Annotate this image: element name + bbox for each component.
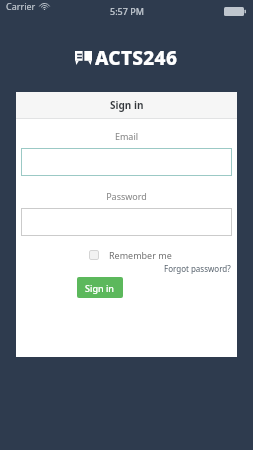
staticText: Password [16, 190, 237, 202]
button[interactable] [21, 208, 232, 236]
staticText: Sign in [110, 98, 144, 112]
button[interactable]: Remember me [89, 249, 172, 261]
button[interactable]: Forgot password? [164, 263, 231, 274]
staticText: Sign in [85, 282, 115, 294]
staticText: Carrier [6, 0, 36, 12]
staticText: ACTS246 [95, 45, 178, 71]
staticText: Forgot password? [164, 263, 231, 274]
button[interactable]: Sign in [77, 277, 123, 298]
staticText: Remember me [109, 249, 172, 261]
button[interactable] [21, 148, 232, 176]
staticText: Email [16, 130, 237, 142]
staticText: 5:57 PM [110, 5, 144, 17]
